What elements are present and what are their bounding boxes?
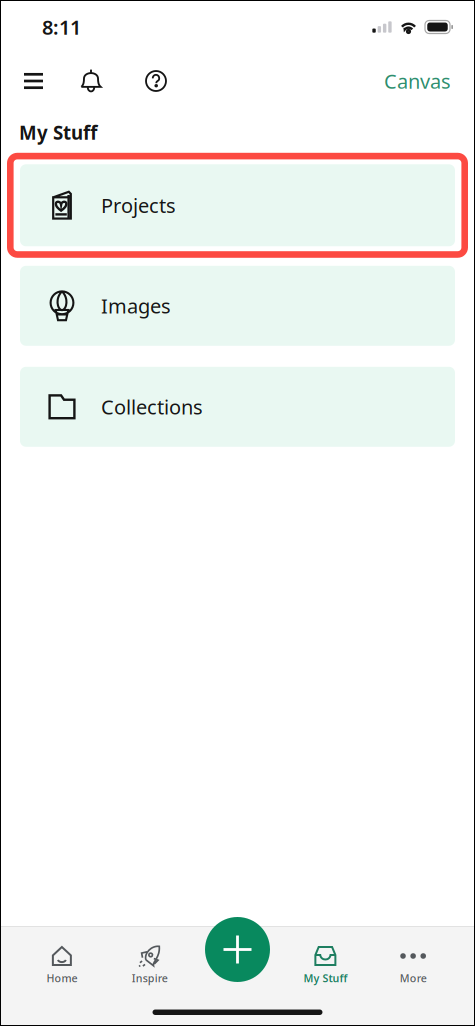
button[interactable]: More [369, 927, 457, 999]
staticText: Home [46, 971, 77, 985]
button[interactable]: Menu [9, 54, 58, 108]
staticText: Collections [101, 393, 203, 420]
button[interactable]: Inspire [106, 927, 194, 999]
staticText: 8:11 [42, 14, 81, 40]
staticText: Inspire [132, 971, 168, 985]
button[interactable]: Home [18, 927, 106, 999]
button[interactable]: Create [205, 917, 270, 982]
button[interactable]: My Stuff [281, 927, 369, 999]
staticText: My Stuff [303, 971, 347, 985]
staticText: More [400, 971, 427, 985]
button[interactable]: Images [20, 266, 455, 346]
button[interactable]: Canvas [384, 54, 451, 108]
button[interactable]: Help [124, 54, 188, 108]
button[interactable]: Collections [20, 367, 455, 447]
staticText: Projects [101, 192, 176, 219]
button[interactable]: Notifications [58, 54, 124, 108]
staticText: My Stuff [19, 120, 97, 145]
staticText: Images [101, 292, 171, 319]
staticText: Canvas [384, 68, 451, 94]
button[interactable]: Projects [20, 164, 455, 246]
